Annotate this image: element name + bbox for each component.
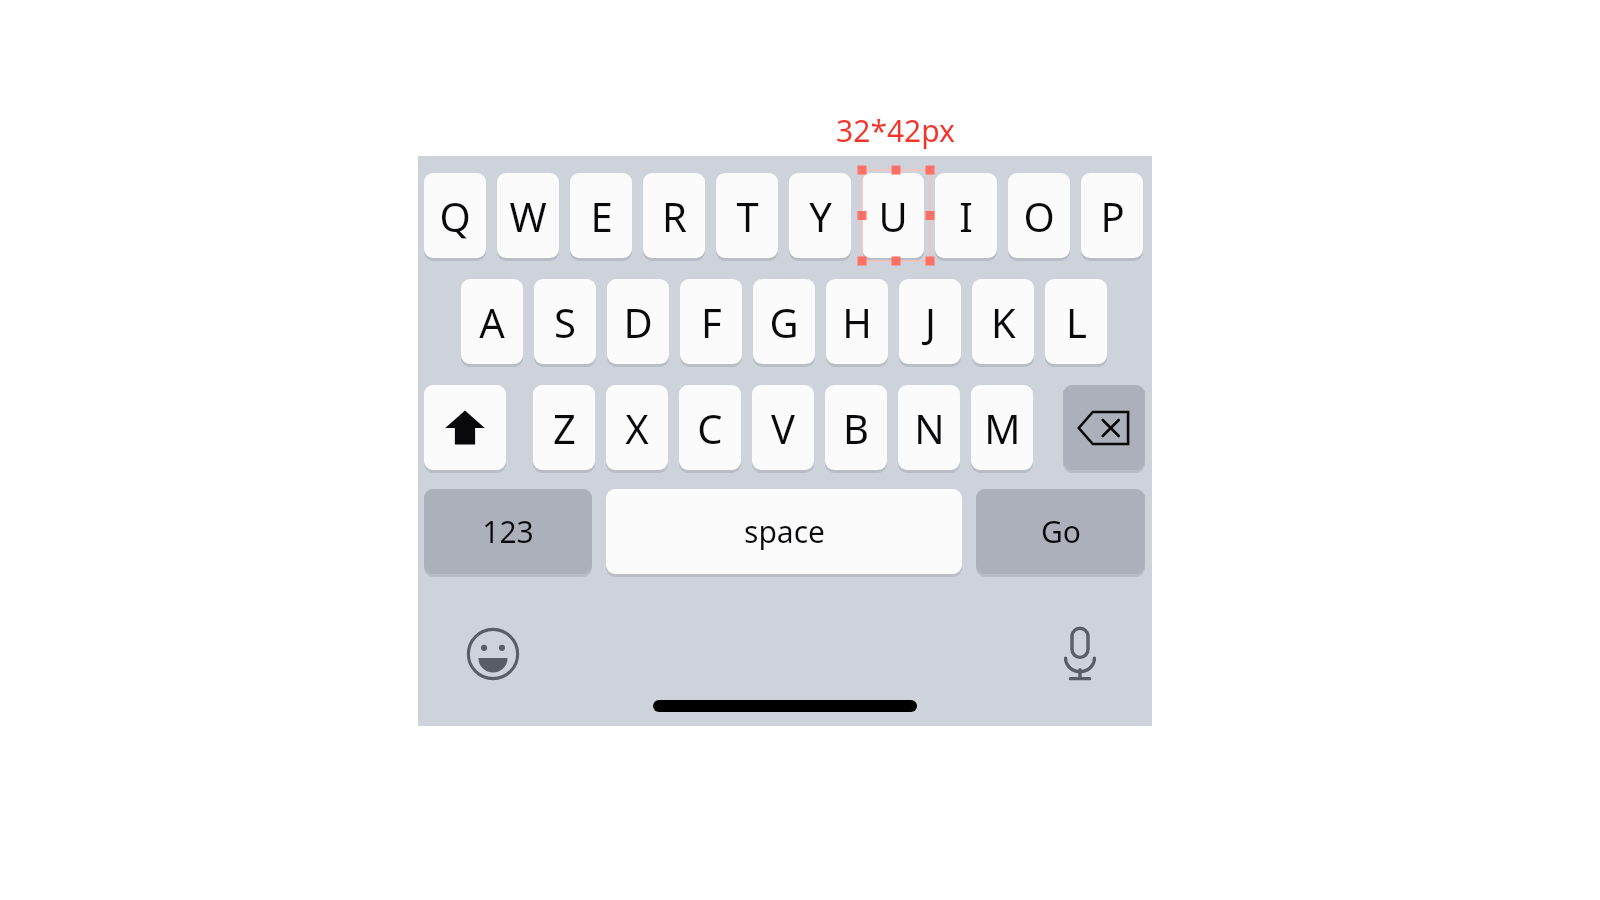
button[interactable]: 123 [424,489,592,574]
button[interactable]: A [461,279,523,364]
button[interactable]: M [971,385,1033,470]
staticText: O [1023,189,1055,243]
button[interactable]: L [1045,279,1107,364]
staticText: Z [553,401,576,455]
button[interactable]: X [606,385,668,470]
button[interactable]: S [534,279,596,364]
button[interactable]: H [826,279,888,364]
button[interactable]: J [899,279,961,364]
staticText: S [554,295,576,349]
staticText: B [843,401,869,455]
button[interactable]: Y [789,173,851,258]
staticText: Go [1041,511,1081,552]
button[interactable]: O [1008,173,1070,258]
button[interactable]: C [679,385,741,470]
staticText: A [479,295,505,349]
staticText: 32*42px [836,110,955,151]
staticText: U [878,189,908,243]
button[interactable]: F [680,279,742,364]
staticText: J [925,295,936,349]
staticText: F [701,295,722,349]
button[interactable]: W [497,173,559,258]
button[interactable]: V [752,385,814,470]
button[interactable]: Q [424,173,486,258]
button[interactable]: Go [976,489,1145,574]
button[interactable]: K [972,279,1034,364]
staticText: N [914,401,945,455]
button[interactable]: E [570,173,632,258]
button[interactable]: T [716,173,778,258]
button[interactable]: Voice input [1048,620,1112,688]
staticText: E [590,189,613,243]
button[interactable]: B [825,385,887,470]
staticText: G [769,295,799,349]
staticText: X [625,401,649,455]
button[interactable]: D [607,279,669,364]
staticText: Q [439,189,471,243]
staticText: T [736,189,759,243]
staticText: C [697,401,723,455]
staticText: M [984,401,1021,455]
staticText: D [623,295,653,349]
staticText: V [771,401,795,455]
button[interactable]: U [862,173,924,258]
button[interactable]: Backspace [1063,385,1145,470]
button[interactable]: Shift [424,385,506,470]
staticText: L [1066,295,1087,349]
button[interactable]: Z [533,385,595,470]
staticText: I [959,189,973,243]
staticText: H [842,295,872,349]
button[interactable]: space [606,489,962,574]
staticText: Y [809,189,832,243]
button[interactable]: Emoji [459,620,527,688]
staticText: space [744,511,825,552]
button[interactable]: N [898,385,960,470]
button[interactable]: I [935,173,997,258]
button[interactable]: G [753,279,815,364]
staticText: P [1100,189,1125,243]
staticText: R [662,189,687,243]
staticText: 123 [482,511,534,552]
button[interactable]: R [643,173,705,258]
button[interactable]: P [1081,173,1143,258]
staticText: W [509,189,547,243]
staticText: K [991,295,1016,349]
